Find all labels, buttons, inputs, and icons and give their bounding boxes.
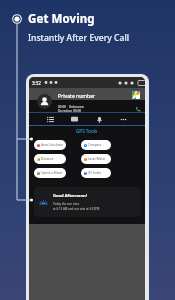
staticText: Good Afternoon! [53, 193, 87, 199]
button[interactable]: Maps [132, 91, 140, 99]
staticText: Laser/Meter [88, 157, 106, 161]
staticText: Private number [58, 93, 96, 100]
staticText: 3:52 [32, 80, 41, 86]
staticText: Get Moving [28, 11, 95, 27]
staticText: Today the sun rises [53, 202, 80, 206]
staticText: Speed-o-Meter [41, 171, 63, 175]
staticText: UV Index [88, 171, 102, 175]
staticText: GPS Tools [76, 128, 98, 134]
button[interactable]: Good Afternoon! [34, 187, 141, 217]
button[interactable]: Speed-o-Meter [34, 168, 66, 178]
button[interactable]: Laser/Meter [81, 154, 111, 164]
button[interactable]: Compass [81, 140, 111, 150]
staticText: Area Calculator [41, 143, 64, 147]
staticText: Instantly After Every Call [28, 32, 130, 44]
button[interactable]: UV Index [81, 168, 111, 178]
staticText: Distance [41, 157, 54, 161]
staticText: 00:00 Unknown [58, 105, 84, 109]
staticText: Duration 00:00 [58, 109, 82, 113]
button[interactable]: Distance [34, 154, 66, 164]
staticText: Compass [88, 143, 102, 147]
staticText: at 6:13 AM and sun sets at 5:52PM [53, 207, 100, 211]
button[interactable]: Area Calculator [34, 140, 66, 150]
